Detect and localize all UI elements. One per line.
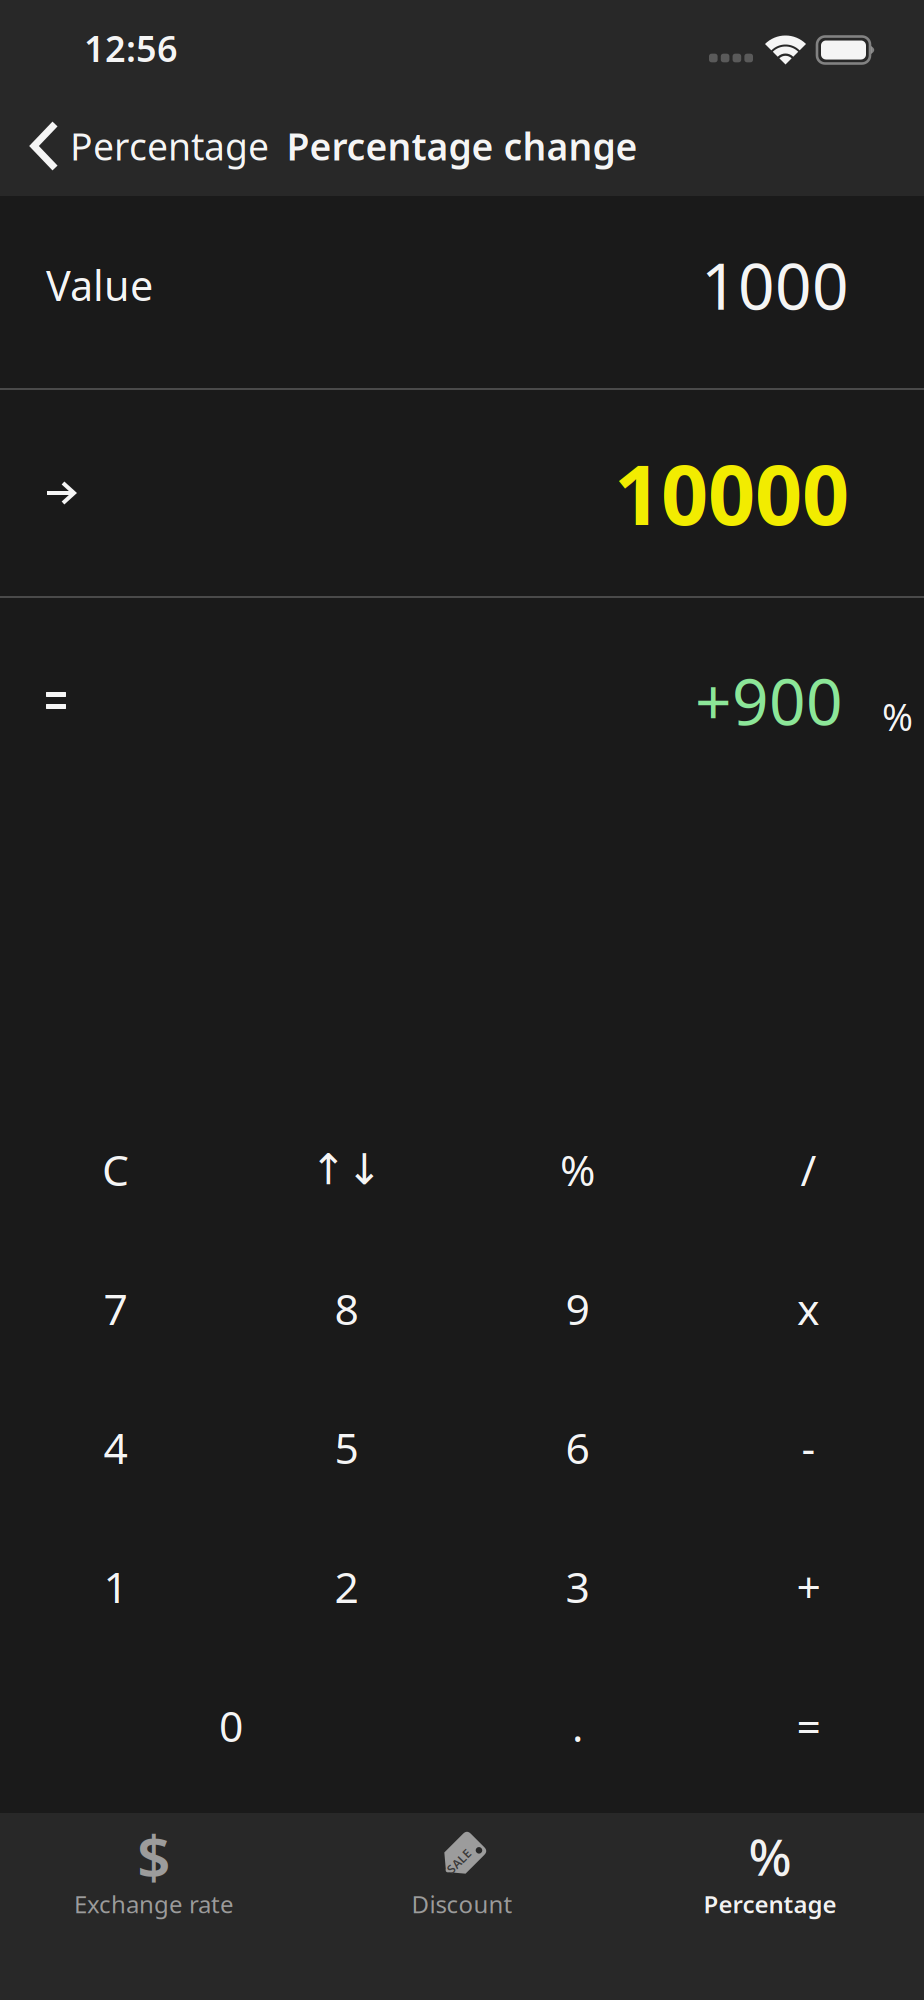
staticText: x (797, 1280, 820, 1337)
button[interactable]: - (693, 1378, 924, 1517)
button[interactable]: ↑↓ (231, 1100, 462, 1239)
button[interactable]: 8 (231, 1239, 462, 1378)
button[interactable]: 6 (462, 1378, 693, 1517)
staticText: 1000 (701, 242, 849, 327)
button[interactable]: C (0, 1100, 231, 1239)
staticText: ↑↓ (310, 1145, 382, 1194)
button[interactable]: 9 (462, 1239, 693, 1378)
button[interactable]: 2 (231, 1517, 462, 1656)
button[interactable]: % (616, 1813, 924, 2000)
staticText: Percentage (703, 1888, 836, 1920)
staticText: % (560, 1141, 595, 1198)
button[interactable]: 4 (0, 1378, 231, 1517)
button[interactable]: x (693, 1239, 924, 1378)
staticText: 12:56 (84, 24, 178, 72)
button[interactable]: = (693, 1656, 924, 1795)
staticText: 3 (565, 1558, 589, 1615)
staticText: C (102, 1141, 129, 1198)
staticText: 4 (103, 1419, 127, 1476)
button[interactable]: 5 (231, 1378, 462, 1517)
button[interactable]: Percentage (0, 96, 283, 196)
staticText: 10000 (614, 438, 849, 548)
staticText: 0 (219, 1697, 243, 1754)
button[interactable]: % (462, 1100, 693, 1239)
staticText: 1 (103, 1558, 127, 1615)
staticText: Value (46, 258, 153, 312)
staticText: SALE (444, 1853, 473, 1869)
button[interactable]: + (693, 1517, 924, 1656)
button[interactable]: 3 (462, 1517, 693, 1656)
staticText: = (796, 1697, 820, 1754)
staticText: Percentage (70, 121, 269, 171)
staticText: $ (137, 1817, 171, 1895)
staticText: - (801, 1419, 815, 1476)
staticText: 8 (334, 1280, 358, 1337)
staticText: 2 (334, 1558, 358, 1615)
button[interactable]: 0 (0, 1656, 462, 1795)
button[interactable]: 7 (0, 1239, 231, 1378)
staticText: 9 (565, 1280, 589, 1337)
staticText: . (572, 1697, 583, 1754)
staticText: 5 (334, 1419, 358, 1476)
staticText: Exchange rate (74, 1888, 234, 1920)
button[interactable]: $ (0, 1813, 308, 2000)
staticText: Percentage change (286, 121, 637, 171)
button[interactable]: / (693, 1100, 924, 1239)
staticText: / (800, 1141, 816, 1198)
staticText: Discount (411, 1888, 512, 1920)
staticText: % (748, 1822, 791, 1890)
button[interactable]: . (462, 1656, 693, 1795)
staticText: 6 (565, 1419, 589, 1476)
staticText: +900 (695, 658, 843, 743)
staticText: 7 (103, 1280, 127, 1337)
button[interactable]: SALE (308, 1813, 616, 2000)
staticText: % (882, 692, 913, 741)
button[interactable]: 1 (0, 1517, 231, 1656)
staticText: + (796, 1558, 820, 1615)
